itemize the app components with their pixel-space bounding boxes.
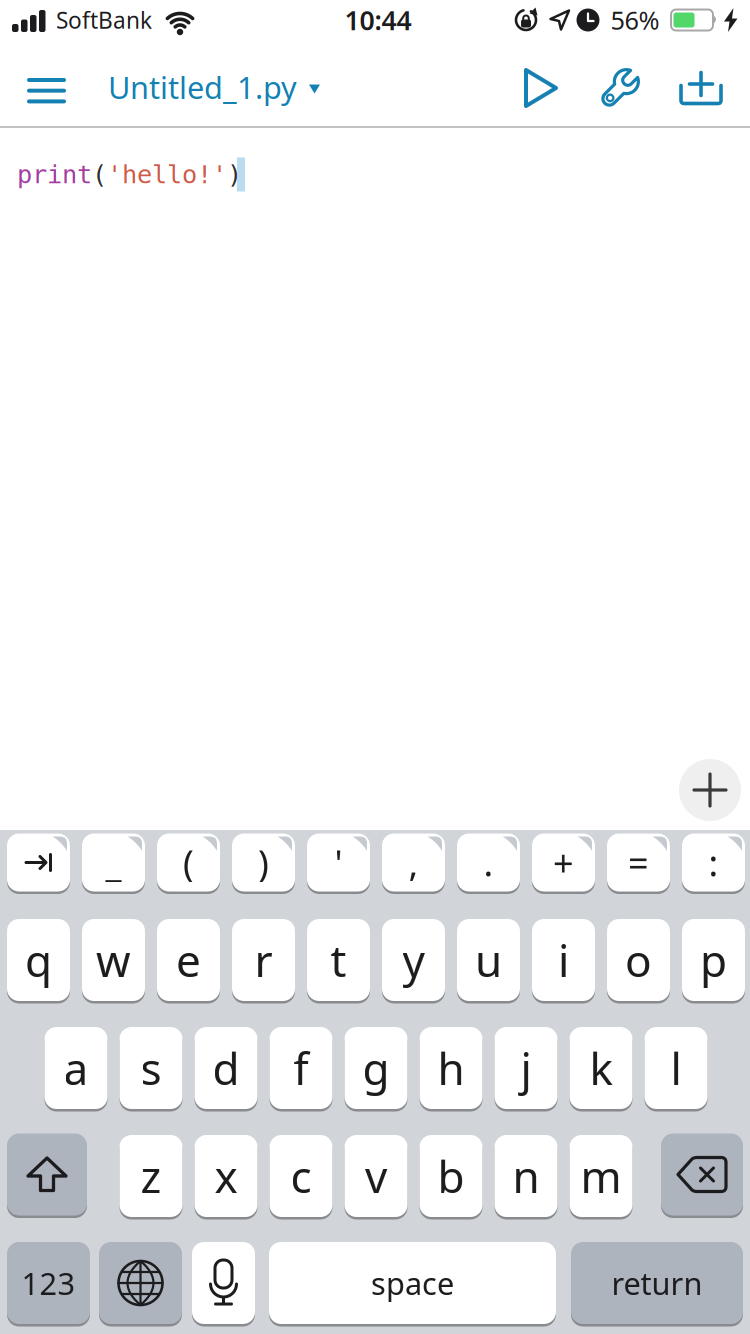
button[interactable]: z: [119, 1133, 182, 1218]
staticText: (: [92, 160, 107, 189]
staticText: Untitled_1.py: [108, 67, 297, 107]
button[interactable]: space: [269, 1240, 556, 1325]
staticText: j: [520, 1039, 531, 1097]
button[interactable]: Next keyboard: [99, 1240, 182, 1325]
staticText: f: [293, 1039, 308, 1097]
button[interactable]: _: [82, 832, 145, 893]
button[interactable]: o: [607, 917, 670, 1002]
staticText: .: [483, 839, 493, 886]
staticText: ': [334, 839, 342, 886]
button[interactable]: e: [157, 917, 220, 1002]
button[interactable]: g: [344, 1025, 407, 1110]
staticText: (: [183, 839, 194, 886]
button[interactable]: Tab: [7, 832, 70, 893]
button[interactable]: =: [607, 832, 670, 893]
staticText: o: [625, 931, 652, 989]
staticText: 56%: [610, 3, 659, 37]
staticText: e: [176, 931, 201, 989]
staticText: print: [17, 160, 92, 189]
button[interactable]: (: [157, 832, 220, 893]
button[interactable]: :: [682, 832, 745, 893]
button[interactable]: ): [232, 832, 295, 893]
staticText: c: [290, 1147, 311, 1205]
button[interactable]: Run: [524, 68, 558, 108]
button[interactable]: y: [382, 917, 445, 1002]
button[interactable]: return: [571, 1240, 743, 1325]
button[interactable]: Shift: [7, 1132, 87, 1217]
staticText: return: [611, 1263, 702, 1303]
staticText: m: [580, 1147, 621, 1205]
staticText: _: [105, 839, 121, 886]
button[interactable]: n: [494, 1133, 557, 1218]
button[interactable]: q: [7, 917, 70, 1002]
staticText: h: [437, 1039, 464, 1097]
staticText: l: [670, 1039, 681, 1097]
button[interactable]: u: [457, 917, 520, 1002]
button[interactable]: k: [569, 1025, 632, 1110]
staticText: =: [628, 839, 649, 886]
button[interactable]: Delete: [661, 1132, 743, 1217]
staticText: x: [214, 1147, 237, 1205]
button[interactable]: Menu: [29, 78, 64, 104]
button[interactable]: p: [682, 917, 745, 1002]
staticText: SoftBank: [56, 5, 152, 35]
button[interactable]: d: [194, 1025, 257, 1110]
staticText: d: [212, 1039, 239, 1097]
button[interactable]: x: [194, 1133, 257, 1218]
staticText: ): [258, 839, 269, 886]
staticText: w: [96, 931, 131, 989]
staticText: g: [362, 1039, 389, 1097]
staticText: y: [402, 931, 424, 989]
staticText: +: [553, 839, 574, 886]
button[interactable]: s: [119, 1025, 182, 1110]
staticText: s: [140, 1039, 161, 1097]
staticText: t: [330, 931, 346, 989]
button[interactable]: v: [344, 1133, 407, 1218]
staticText: q: [25, 931, 52, 989]
staticText: a: [63, 1039, 88, 1097]
staticText: u: [475, 931, 502, 989]
button[interactable]: Dictate: [192, 1240, 255, 1325]
button[interactable]: c: [269, 1133, 332, 1218]
button[interactable]: Add: [679, 759, 741, 821]
staticText: ,: [408, 839, 418, 886]
button[interactable]: w: [82, 917, 145, 1002]
button[interactable]: +: [532, 832, 595, 893]
staticText: 'hello!': [107, 160, 227, 189]
staticText: i: [558, 931, 569, 989]
staticText: k: [589, 1039, 612, 1097]
button[interactable]: New file: [679, 72, 722, 105]
button[interactable]: Tools: [597, 65, 643, 111]
button[interactable]: ': [307, 832, 370, 893]
button[interactable]: h: [419, 1025, 482, 1110]
button[interactable]: f: [269, 1025, 332, 1110]
staticText: b: [437, 1147, 464, 1205]
button[interactable]: ,: [382, 832, 445, 893]
button[interactable]: r: [232, 917, 295, 1002]
staticText: 10:44: [344, 2, 411, 38]
button[interactable]: 123: [7, 1240, 90, 1325]
button[interactable]: a: [44, 1025, 107, 1110]
button[interactable]: l: [644, 1025, 707, 1110]
button[interactable]: m: [569, 1133, 632, 1218]
staticText: space: [371, 1263, 454, 1303]
staticText: 123: [21, 1263, 75, 1303]
button[interactable]: t: [307, 917, 370, 1002]
button[interactable]: j: [494, 1025, 557, 1110]
staticText: :: [708, 839, 718, 886]
staticText: n: [512, 1147, 539, 1205]
button[interactable]: .: [457, 832, 520, 893]
staticText: z: [140, 1147, 161, 1205]
staticText: r: [254, 931, 272, 989]
button[interactable]: b: [419, 1133, 482, 1218]
button[interactable]: Untitled_1.py: [108, 67, 320, 107]
staticText: p: [700, 931, 727, 989]
staticText: ): [227, 160, 242, 189]
button[interactable]: i: [532, 917, 595, 1002]
staticText: v: [365, 1147, 387, 1205]
